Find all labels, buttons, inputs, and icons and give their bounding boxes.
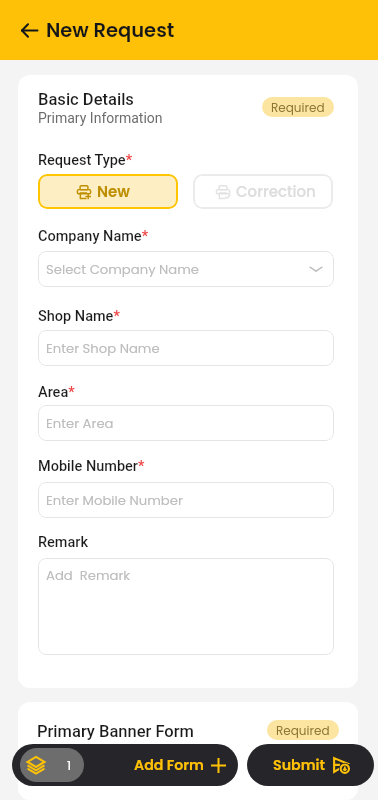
button[interactable]: Add Remark (38, 558, 334, 655)
button[interactable]: New (38, 174, 178, 209)
staticText: Submit (273, 755, 325, 775)
staticText: Add Remark (46, 566, 131, 584)
staticText: Add Form (134, 755, 204, 775)
staticText: Remark (38, 534, 88, 551)
button[interactable]: Enter Area (38, 405, 334, 441)
staticText: Required (271, 99, 325, 116)
staticText: Required (276, 722, 330, 739)
button[interactable]: Required (267, 720, 339, 740)
button[interactable]: Back (16, 17, 42, 43)
staticText: Basic Details (38, 90, 134, 109)
staticText: Correction (236, 181, 316, 202)
staticText: Request Type* (38, 152, 133, 169)
button[interactable]: Correction (193, 174, 333, 209)
staticText: Primary Information (38, 110, 163, 126)
button[interactable]: Enter Mobile Number (38, 482, 334, 518)
button[interactable]: Select Company Name (38, 251, 334, 287)
staticText: New Request (46, 17, 175, 44)
staticText: 1 (67, 756, 72, 774)
staticText: Enter Shop Name (46, 339, 160, 357)
staticText: Enter Area (46, 414, 114, 432)
staticText: Enter Mobile Number (46, 491, 183, 509)
button[interactable]: Required (262, 97, 334, 117)
button[interactable]: Submit (247, 744, 374, 786)
staticText: Shop Name* (38, 308, 120, 325)
staticText: Select Company Name (46, 260, 200, 278)
staticText: Company Name* (38, 228, 149, 245)
staticText: Mobile Number* (38, 458, 145, 475)
staticText: New (97, 181, 130, 202)
button[interactable]: 1 (12, 744, 238, 786)
button[interactable]: Enter Shop Name (38, 330, 334, 366)
staticText: Area* (38, 384, 75, 401)
staticText: Primary Banner Form (37, 722, 267, 741)
